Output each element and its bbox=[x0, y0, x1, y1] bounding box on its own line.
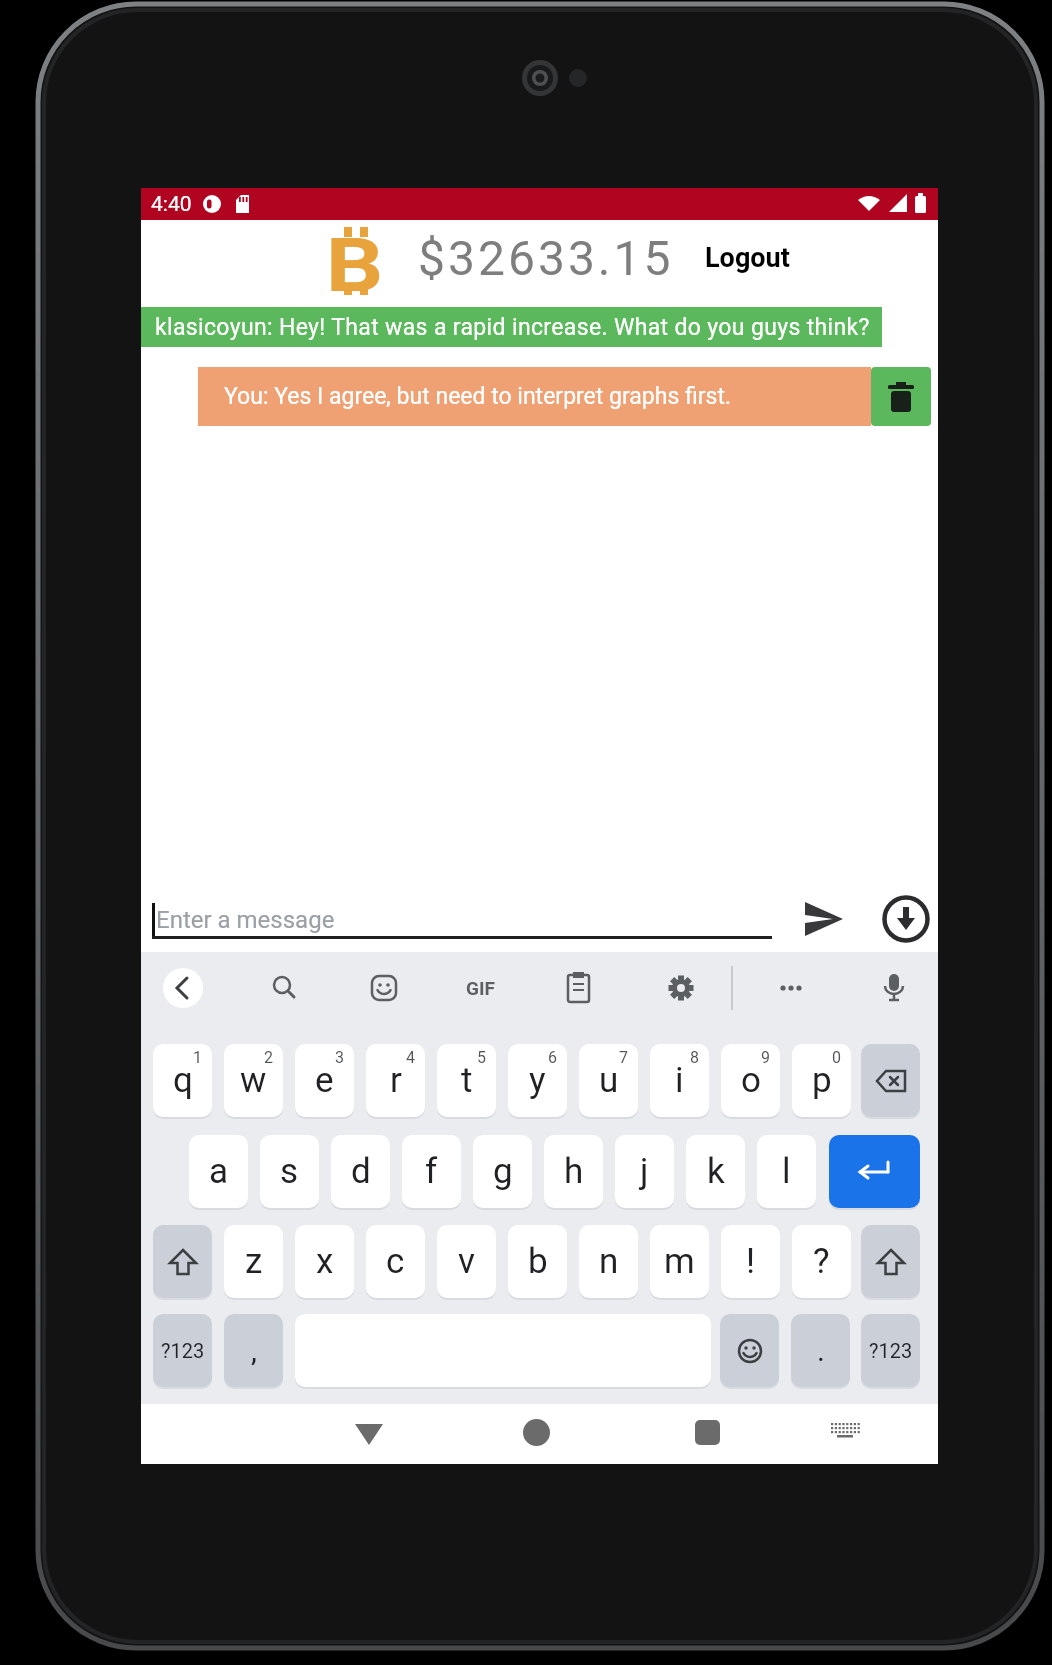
button[interactable]: klasicoyun: Hey! That was a rapid increa… bbox=[141, 307, 882, 347]
button[interactable]: y bbox=[508, 1044, 567, 1117]
staticText: $32633.15 bbox=[418, 230, 674, 286]
button[interactable]: Logout bbox=[697, 238, 797, 278]
button[interactable]: w bbox=[224, 1044, 283, 1117]
staticText: o bbox=[741, 1060, 761, 1101]
staticText: 4 bbox=[406, 1048, 415, 1067]
button[interactable]: B bbox=[323, 222, 387, 300]
staticText: p bbox=[812, 1060, 832, 1101]
staticText: s bbox=[280, 1151, 299, 1192]
button[interactable] bbox=[829, 1135, 920, 1208]
button[interactable]: l bbox=[757, 1135, 816, 1208]
staticText: 4:40 bbox=[151, 192, 192, 217]
button[interactable]: i bbox=[650, 1044, 709, 1117]
button[interactable]: k bbox=[686, 1135, 745, 1208]
button[interactable]: d bbox=[331, 1135, 390, 1208]
staticText: Enter a message bbox=[156, 906, 335, 934]
button[interactable] bbox=[353, 1420, 385, 1448]
button[interactable]: ?123 bbox=[861, 1314, 920, 1387]
button[interactable] bbox=[153, 1225, 212, 1298]
button[interactable]: z bbox=[224, 1225, 283, 1298]
button[interactable] bbox=[720, 1314, 779, 1387]
staticText: i bbox=[675, 1060, 684, 1101]
button[interactable]: q bbox=[153, 1044, 212, 1117]
staticText: You: Yes I agree, but need to interpret … bbox=[224, 383, 731, 410]
staticText: ?123 bbox=[869, 1339, 913, 1362]
staticText: d bbox=[351, 1151, 371, 1192]
staticText: w bbox=[240, 1060, 267, 1101]
staticText: 2 bbox=[264, 1048, 273, 1067]
staticText: q bbox=[173, 1060, 193, 1101]
staticText: ! bbox=[746, 1241, 756, 1282]
button[interactable]: b bbox=[508, 1225, 567, 1298]
button[interactable]: e bbox=[295, 1044, 354, 1117]
button[interactable] bbox=[694, 1419, 720, 1445]
button[interactable]: j bbox=[615, 1135, 674, 1208]
staticText: v bbox=[458, 1241, 475, 1282]
button[interactable]: x bbox=[295, 1225, 354, 1298]
button[interactable] bbox=[163, 968, 203, 1008]
staticText: 0 bbox=[832, 1048, 841, 1067]
button[interactable]: c bbox=[366, 1225, 425, 1298]
button[interactable]: ?123 bbox=[153, 1314, 212, 1387]
staticText: l bbox=[782, 1151, 791, 1192]
staticText: klasicoyun: Hey! That was a rapid increa… bbox=[155, 314, 870, 341]
button[interactable]: p bbox=[792, 1044, 851, 1117]
staticText: r bbox=[390, 1060, 402, 1101]
staticText: ? bbox=[813, 1241, 830, 1282]
staticText: 9 bbox=[761, 1048, 770, 1067]
staticText: 3 bbox=[335, 1048, 344, 1067]
button[interactable]: a bbox=[189, 1135, 248, 1208]
staticText: t bbox=[461, 1060, 473, 1101]
staticText: h bbox=[564, 1151, 584, 1192]
staticText: ?123 bbox=[161, 1339, 205, 1362]
staticText: 8 bbox=[690, 1048, 699, 1067]
button[interactable]: f bbox=[402, 1135, 461, 1208]
button[interactable] bbox=[871, 367, 931, 426]
button[interactable]: u bbox=[579, 1044, 638, 1117]
staticText: k bbox=[707, 1151, 725, 1192]
staticText: x bbox=[316, 1241, 334, 1282]
button[interactable] bbox=[861, 1225, 920, 1298]
button[interactable]: s bbox=[260, 1135, 319, 1208]
staticText: c bbox=[386, 1241, 405, 1282]
button[interactable] bbox=[829, 1420, 861, 1446]
staticText: u bbox=[599, 1060, 619, 1101]
staticText: a bbox=[209, 1151, 229, 1192]
button[interactable] bbox=[861, 1044, 920, 1117]
staticText: 6 bbox=[548, 1048, 557, 1067]
staticText: GIF bbox=[466, 977, 495, 999]
staticText: 1 bbox=[193, 1048, 202, 1067]
button[interactable]: m bbox=[650, 1225, 709, 1298]
staticText: Logout bbox=[705, 242, 790, 274]
button[interactable] bbox=[522, 1418, 550, 1446]
staticText: f bbox=[425, 1151, 438, 1192]
button[interactable]: ? bbox=[792, 1225, 851, 1298]
staticText: m bbox=[664, 1241, 695, 1282]
staticText: 7 bbox=[619, 1048, 628, 1067]
staticText: y bbox=[529, 1060, 546, 1101]
staticText: 5 bbox=[477, 1048, 486, 1067]
staticText: b bbox=[528, 1241, 548, 1282]
button[interactable]: h bbox=[544, 1135, 603, 1208]
button[interactable]: , bbox=[224, 1314, 283, 1387]
button[interactable]: n bbox=[579, 1225, 638, 1298]
button[interactable]: ! bbox=[721, 1225, 780, 1298]
button[interactable]: o bbox=[721, 1044, 780, 1117]
staticText: , bbox=[251, 1333, 257, 1368]
staticText: e bbox=[315, 1060, 334, 1101]
staticText: n bbox=[599, 1241, 619, 1282]
staticText: j bbox=[640, 1151, 649, 1192]
button[interactable]: v bbox=[437, 1225, 496, 1298]
staticText: z bbox=[245, 1241, 263, 1282]
button[interactable]: r bbox=[366, 1044, 425, 1117]
button[interactable]: t bbox=[437, 1044, 496, 1117]
button[interactable]: . bbox=[791, 1314, 850, 1387]
staticText: g bbox=[493, 1151, 513, 1192]
staticText: B bbox=[326, 222, 384, 300]
staticText: . bbox=[817, 1333, 825, 1368]
button[interactable]: You: Yes I agree, but need to interpret … bbox=[198, 367, 871, 426]
button[interactable]: g bbox=[473, 1135, 532, 1208]
